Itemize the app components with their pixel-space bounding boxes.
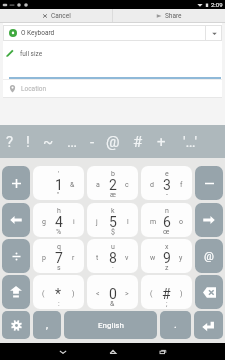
button[interactable]: Recents — [138, 343, 188, 360]
button[interactable]: Move right — [195, 203, 223, 237]
button[interactable]: # — [128, 125, 148, 158]
staticText: Share — [165, 12, 182, 20]
button[interactable]: 2 — [87, 166, 138, 200]
staticText: d — [150, 181, 154, 189]
staticText: n — [165, 207, 169, 215]
staticText: > — [125, 290, 129, 298]
button[interactable]: At sign — [195, 239, 223, 273]
button[interactable]: Cancel — [0, 9, 112, 23]
button[interactable]: Move left — [2, 203, 30, 237]
staticText: h — [57, 207, 61, 215]
staticText: x — [165, 243, 169, 251]
staticText: O Keyboard — [21, 29, 55, 37]
button[interactable]: @ — [103, 125, 123, 158]
staticText: y — [179, 254, 183, 262]
staticText: ( — [42, 290, 45, 298]
staticText: p — [42, 254, 46, 262]
staticText: < — [96, 290, 100, 298]
staticText: # — [133, 133, 143, 151]
button[interactable]: ? — [0, 125, 20, 158]
button[interactable]: Home — [88, 343, 138, 360]
staticText: 0 — [109, 286, 117, 302]
staticText: ) — [72, 290, 75, 298]
staticText: 1 — [55, 177, 63, 193]
button[interactable]: Backspace — [195, 275, 223, 309]
button[interactable]: Minus — [195, 166, 223, 200]
button[interactable]: '…' — [180, 125, 200, 158]
button[interactable]: English — [64, 311, 157, 339]
button[interactable]: 7 — [33, 239, 84, 273]
button[interactable]: Location — [3, 79, 222, 98]
button[interactable]: + — [151, 125, 171, 158]
button[interactable]: 5 — [87, 203, 138, 237]
button[interactable]: 0 — [87, 275, 138, 309]
staticText: 8 — [109, 250, 117, 266]
staticText: , — [46, 319, 48, 331]
staticText: 6 — [163, 214, 171, 230]
staticText: . — [174, 319, 177, 331]
staticText: 9 — [163, 250, 171, 266]
button[interactable]: Enter — [194, 311, 223, 339]
staticText: '…' — [183, 133, 198, 151]
button[interactable]: Period — [160, 311, 191, 339]
staticText: English — [98, 321, 124, 330]
button[interactable]: Divide — [2, 239, 30, 273]
staticText: @ — [106, 133, 120, 151]
button[interactable]: 6 — [141, 203, 192, 237]
button[interactable]: Comma — [33, 311, 61, 339]
staticText: " — [57, 191, 60, 199]
button[interactable]: 8 — [87, 239, 138, 273]
staticText: + — [157, 133, 166, 151]
staticText: v — [125, 254, 129, 262]
staticText: 3 — [163, 177, 171, 193]
staticText: 2:09 — [211, 1, 223, 8]
staticText: # — [162, 286, 171, 302]
staticText: g — [42, 218, 46, 226]
button[interactable]: 9 — [141, 239, 192, 273]
staticText: l — [127, 218, 129, 226]
staticText: ! — [26, 133, 30, 151]
staticText: c — [125, 181, 129, 189]
button[interactable]: Settings — [2, 311, 30, 339]
staticText: - — [166, 191, 168, 199]
staticText: & — [110, 300, 115, 308]
staticText: 4 — [55, 214, 63, 230]
staticText: ) — [180, 290, 183, 298]
staticText: k — [111, 207, 115, 215]
button[interactable]: 3 — [141, 166, 192, 200]
staticText: z — [165, 264, 169, 272]
button[interactable]: 1 — [33, 166, 84, 200]
button[interactable]: Share — [113, 9, 225, 23]
staticText: b — [111, 170, 115, 178]
button[interactable]: # — [141, 275, 192, 309]
staticText: … — [67, 133, 78, 151]
staticText: % — [56, 228, 62, 236]
staticText: ; — [166, 300, 168, 308]
button[interactable]: Shift — [2, 275, 30, 309]
button[interactable]: … — [62, 125, 82, 158]
button[interactable]: Plus — [2, 166, 30, 200]
button[interactable]: ! — [18, 125, 38, 158]
staticText: 7 — [55, 250, 63, 266]
staticText: w — [150, 254, 156, 262]
staticText: i — [73, 218, 75, 226]
button[interactable]: Back — [38, 343, 88, 360]
staticText: · — [112, 264, 114, 272]
staticText: q — [57, 243, 61, 251]
staticText: & — [70, 181, 75, 189]
staticText: f — [180, 181, 183, 189]
staticText: o — [179, 218, 183, 226]
staticText: t — [96, 254, 99, 262]
staticText: œ — [163, 228, 170, 236]
staticText: Cancel — [51, 12, 71, 20]
staticText: a — [96, 181, 100, 189]
button[interactable]: 4 — [33, 203, 84, 237]
staticText: ~ — [43, 133, 54, 151]
staticText: 5 — [109, 214, 117, 230]
button[interactable]: * — [33, 275, 84, 309]
staticText: ' — [58, 170, 60, 178]
staticText: s — [57, 264, 61, 272]
button[interactable]: ~ — [38, 125, 58, 158]
button[interactable]: - — [82, 125, 102, 158]
button[interactable]: O Keyboard — [3, 25, 222, 41]
